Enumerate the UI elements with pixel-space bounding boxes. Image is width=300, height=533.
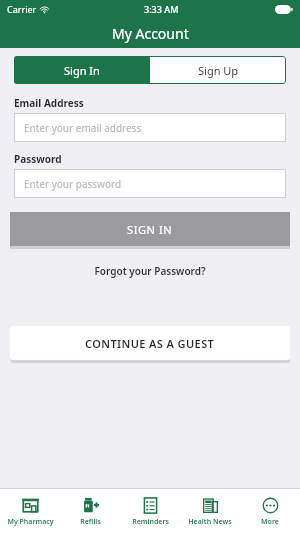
button[interactable]: More <box>240 489 300 533</box>
staticText: Health News <box>188 517 232 527</box>
button[interactable]: Reminders <box>120 489 180 533</box>
staticText: 3:33 AM <box>144 3 179 15</box>
staticText: Sign In <box>64 63 100 78</box>
button[interactable]: My Pharmacy <box>0 489 60 533</box>
button[interactable]: Sign In <box>14 56 150 84</box>
staticText: My Pharmacy <box>7 517 54 527</box>
button[interactable]: Enter your password <box>14 169 286 198</box>
staticText: More <box>261 517 279 527</box>
staticText: SIGN IN <box>127 222 173 237</box>
button[interactable]: SIGN IN <box>10 212 290 246</box>
button[interactable]: Sign Up <box>150 56 286 84</box>
button[interactable]: Enter your email address <box>14 113 286 142</box>
staticText: Enter your email address <box>24 121 142 135</box>
button[interactable]: Forgot your Password? <box>86 262 214 280</box>
staticText: Carrier <box>7 3 37 15</box>
staticText: Password <box>14 152 62 166</box>
button[interactable]: Refills <box>60 489 120 533</box>
button[interactable]: Health News <box>180 489 240 533</box>
staticText: Reminders <box>132 517 169 527</box>
button[interactable]: CONTINUE AS A GUEST <box>10 326 290 360</box>
staticText: My Account <box>112 24 189 43</box>
staticText: CONTINUE AS A GUEST <box>85 336 215 351</box>
staticText: Enter your password <box>24 177 122 191</box>
staticText: Email Address <box>14 96 84 110</box>
staticText: Refills <box>80 517 101 527</box>
staticText: Sign Up <box>198 63 239 78</box>
